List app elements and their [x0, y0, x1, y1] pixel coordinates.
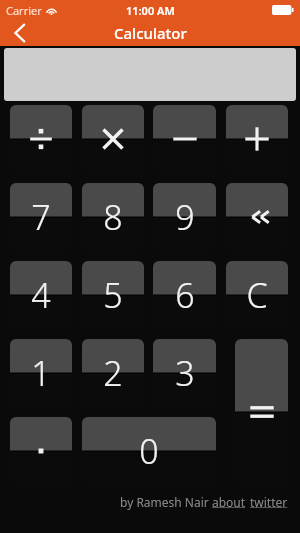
staticText: 4 [31, 272, 51, 318]
staticText: Calculator [114, 23, 187, 43]
button[interactable]: 4 [10, 261, 72, 329]
button[interactable]: Plus [226, 105, 288, 173]
button[interactable]: 7 [10, 183, 72, 251]
button[interactable]: 3 [153, 339, 216, 407]
staticText: 1 [31, 350, 51, 396]
button[interactable]: 5 [82, 261, 144, 329]
staticText: C [246, 272, 268, 318]
staticText: 2 [103, 350, 123, 396]
staticText: 7 [31, 194, 51, 240]
button[interactable]: Backspace [226, 183, 288, 251]
staticText: 11:00 AM [126, 3, 175, 18]
button[interactable]: about [212, 494, 246, 510]
button[interactable]: Minus [153, 105, 216, 173]
button[interactable]: 0 [82, 417, 216, 485]
staticText: 8 [103, 194, 123, 240]
button[interactable]: Decimal point [10, 417, 72, 485]
staticText: about [212, 494, 246, 510]
staticText: 5 [103, 272, 123, 318]
button[interactable]: Multiply [82, 105, 144, 173]
staticText: by Ramesh Nair [120, 494, 212, 510]
button[interactable]: 6 [153, 261, 216, 329]
button[interactable]: 9 [153, 183, 216, 251]
staticText: twitter [250, 494, 288, 510]
staticText: Carrier [6, 3, 42, 18]
staticText: 3 [175, 350, 195, 396]
button[interactable]: Divide [10, 105, 72, 173]
staticText: 9 [175, 194, 195, 240]
button[interactable]: 8 [82, 183, 144, 251]
button[interactable]: C [226, 261, 288, 329]
button[interactable]: 1 [10, 339, 72, 407]
button[interactable]: twitter [250, 494, 288, 510]
button[interactable]: Back [0, 20, 40, 46]
staticText: 0 [139, 428, 159, 474]
button[interactable]: Equals [235, 339, 288, 485]
staticText: 6 [175, 272, 195, 318]
button[interactable]: 2 [82, 339, 144, 407]
